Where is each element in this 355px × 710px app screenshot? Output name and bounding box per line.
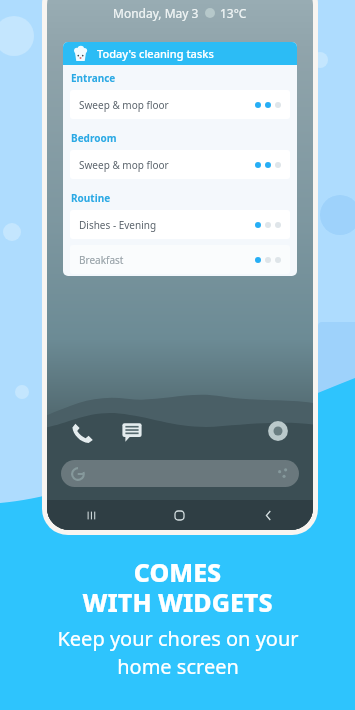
staticText: Monday, May 3	[113, 5, 199, 21]
button[interactable]: Phone	[67, 416, 97, 446]
staticText: Breakfast	[79, 253, 124, 267]
staticText: 13°C	[220, 5, 247, 21]
staticText: COMES WITH WIDGETS	[82, 555, 273, 620]
button[interactable]: Back	[224, 500, 313, 530]
button[interactable]: Home	[135, 500, 224, 530]
staticText: Today's cleaning tasks	[97, 46, 214, 61]
button[interactable]: Breakfast	[70, 245, 290, 274]
button[interactable]: Sweep & mop floor	[70, 150, 290, 179]
button[interactable]: Dishes - Evening	[70, 210, 290, 239]
button[interactable]: Sweep & mop floor	[70, 90, 290, 119]
button[interactable]: Search	[61, 460, 299, 487]
staticText: Entrance	[71, 71, 116, 85]
staticText: Sweep & mop floor	[79, 158, 169, 172]
staticText: Sweep & mop floor	[79, 98, 169, 112]
button[interactable]: Today's cleaning tasks	[63, 42, 297, 65]
button[interactable]: Browser	[263, 416, 293, 446]
staticText: Bedroom	[71, 131, 117, 145]
staticText: Routine	[71, 191, 111, 205]
staticText: Keep your chores on your home screen	[57, 625, 299, 680]
button[interactable]: Messages	[117, 416, 147, 446]
button[interactable]: Recents	[47, 500, 135, 530]
staticText: Dishes - Evening	[79, 218, 157, 232]
